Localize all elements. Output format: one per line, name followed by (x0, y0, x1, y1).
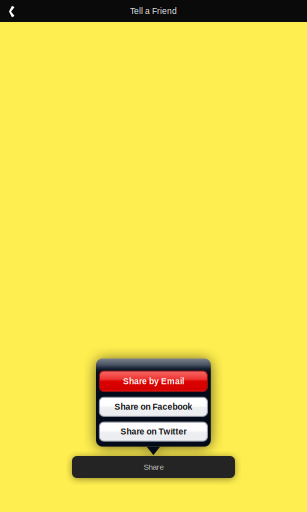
staticText: Share (143, 462, 163, 471)
staticText: Share on Twitter (120, 427, 186, 436)
button[interactable]: Share (72, 456, 235, 478)
staticText: Share by Email (123, 376, 184, 386)
button[interactable]: Share on Twitter (99, 422, 207, 441)
staticText: Share on Facebook (114, 402, 192, 411)
button[interactable]: Share on Facebook (99, 397, 207, 416)
button[interactable]: Share by Email (99, 371, 207, 391)
staticText: Tell a Friend (130, 6, 177, 16)
button[interactable]: Back (0, 0, 23, 22)
